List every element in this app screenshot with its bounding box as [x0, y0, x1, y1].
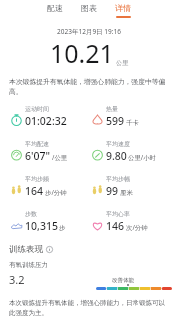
staticText: 平均配速 — [25, 140, 49, 148]
staticText: 公里/小时 — [128, 153, 156, 162]
staticText: 本次锻炼提升有氧体能，增强心肺能力，强度中等偏高。 — [9, 77, 169, 96]
staticText: 平均速度 — [106, 140, 130, 148]
staticText: 图表 — [81, 3, 97, 13]
staticText: 有氧训练压力 — [9, 261, 48, 269]
staticText: 配速 — [47, 3, 63, 13]
staticText: /公里 — [52, 153, 68, 162]
staticText: 公里 — [116, 59, 128, 67]
button[interactable]: 步数 — [9, 210, 66, 233]
button[interactable]: 平均步幅 — [90, 175, 133, 198]
staticText: 6'07" — [25, 149, 51, 163]
staticText: 详情 — [115, 3, 131, 13]
button[interactable]: 图表 — [77, 2, 101, 17]
staticText: 2023年12月9日 19:16 — [0, 27, 178, 36]
staticText: 599 — [106, 114, 125, 128]
staticText: 平均心率 — [106, 210, 130, 218]
staticText: 步 — [59, 224, 66, 232]
button[interactable]: 平均速度 — [90, 140, 156, 163]
staticText: 01:02:32 — [25, 114, 67, 128]
staticText: 99 — [106, 184, 119, 198]
staticText: 运动时间 — [25, 105, 49, 113]
staticText: 千卡 — [126, 119, 139, 127]
staticText: 平均步频 — [25, 175, 49, 183]
staticText: 平均步幅 — [106, 175, 130, 183]
staticText: 9.80 — [106, 149, 127, 163]
other: Info — [46, 246, 53, 253]
staticText: 热量 — [106, 105, 118, 113]
staticText: 步数 — [25, 210, 37, 218]
button[interactable]: 配速 — [43, 2, 67, 17]
staticText: 改善体能 — [112, 277, 134, 284]
button[interactable]: 热量 — [90, 105, 139, 128]
staticText: 146 — [106, 219, 125, 233]
button[interactable]: 详情 — [111, 2, 135, 19]
staticText: 10,315 — [25, 219, 58, 233]
button[interactable]: 运动时间 — [9, 105, 67, 128]
staticText: 厘米 — [120, 189, 133, 197]
staticText: 次/分钟 — [126, 223, 148, 232]
staticText: 步/分钟 — [45, 188, 67, 197]
staticText: 本次锻炼提升有氧体能，增强心肺能力，日常锻炼可以此强度为主。 — [9, 299, 169, 317]
staticText: 训练表现 — [9, 244, 43, 255]
staticText: 10.21 — [50, 36, 114, 70]
button[interactable]: 平均心率 — [90, 210, 148, 233]
staticText: 164 — [25, 184, 44, 198]
staticText: 3.2 — [9, 272, 25, 287]
button[interactable]: 平均配速 — [9, 140, 68, 163]
button[interactable]: 平均步频 — [9, 175, 67, 198]
